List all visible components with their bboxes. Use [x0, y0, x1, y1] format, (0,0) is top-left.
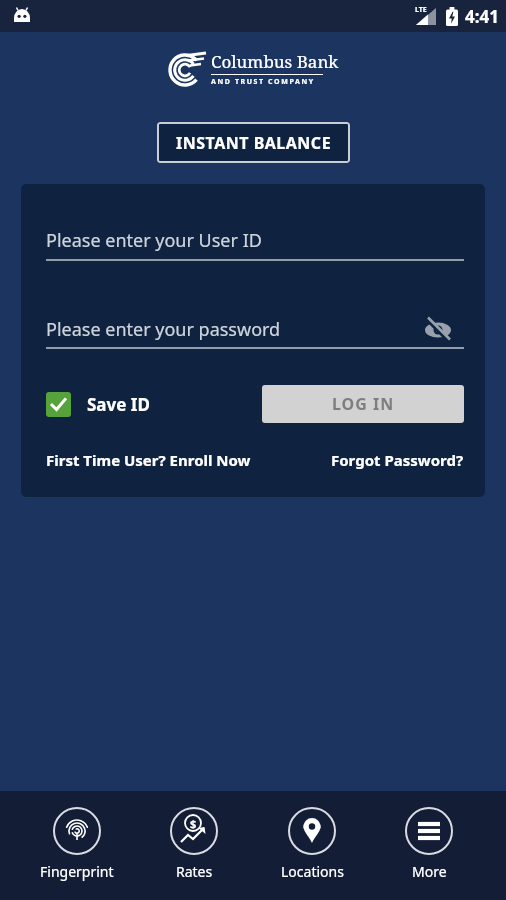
button[interactable] — [424, 319, 452, 341]
button[interactable]: Locations — [266, 791, 358, 900]
button[interactable]: LOG IN — [262, 385, 464, 423]
staticText: LOG IN — [332, 393, 395, 415]
staticText: More — [412, 862, 447, 881]
button[interactable]: $ — [148, 791, 240, 900]
button[interactable]: More — [383, 791, 475, 900]
button[interactable]: Forgot Password? — [331, 450, 464, 470]
button[interactable]: INSTANT BALANCE — [157, 122, 350, 163]
button[interactable]: Save ID — [46, 392, 150, 417]
staticText: Please enter your User ID — [46, 228, 262, 253]
button[interactable]: Fingerprint — [31, 791, 123, 900]
staticText: AND TRUST COMPANY — [211, 77, 315, 87]
staticText: Rates — [176, 862, 213, 881]
staticText: Locations — [281, 862, 344, 881]
staticText: 4:41 — [465, 5, 499, 28]
staticText: $ — [190, 816, 197, 831]
button[interactable]: First Time User? Enroll Now — [46, 450, 251, 470]
staticText: Fingerprint — [40, 862, 114, 881]
staticText: LTE — [415, 5, 427, 15]
staticText: Columbus Bank — [211, 50, 339, 73]
staticText: Please enter your password — [46, 317, 281, 342]
staticText: Save ID — [87, 393, 150, 416]
staticText: INSTANT BALANCE — [176, 132, 332, 154]
